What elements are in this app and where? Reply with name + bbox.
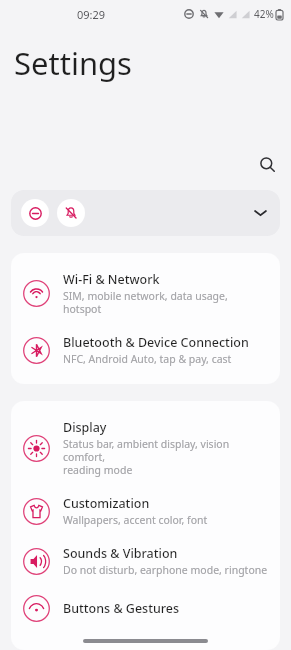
button[interactable]: Customization (11, 486, 280, 536)
button[interactable]: Mute notifications (57, 199, 85, 227)
staticText: Bluetooth & Device Connection (63, 334, 249, 351)
staticText: Settings (14, 42, 132, 84)
staticText: Wallpapers, accent color, font (63, 513, 208, 527)
staticText: NFC, Android Auto, tap & pay, cast (63, 352, 232, 366)
staticText: 09:29 (77, 7, 106, 22)
button[interactable]: Search (251, 148, 283, 180)
staticText: SIM, mobile network, data usage, hotspot (63, 289, 268, 316)
staticText: Sounds & Vibration (63, 545, 178, 562)
button[interactable]: Sounds & Vibration (11, 536, 280, 586)
staticText: Customization (63, 495, 150, 512)
button[interactable]: Do not disturb (11, 190, 280, 236)
button[interactable]: Display (11, 410, 280, 486)
staticText: 42% (254, 7, 274, 21)
staticText: Display (63, 419, 107, 436)
staticText: Do not disturb, earphone mode, ringtone (63, 563, 268, 577)
button[interactable]: Bluetooth & Device Connection (11, 325, 280, 375)
button[interactable]: Do not disturb (21, 199, 49, 227)
staticText: Status bar, ambient display, vision comf… (63, 437, 268, 477)
button[interactable]: Expand (248, 201, 272, 225)
button[interactable]: Wi-Fi & Network (11, 262, 280, 325)
staticText: Buttons & Gestures (63, 600, 180, 617)
staticText: Wi-Fi & Network (63, 271, 160, 288)
button[interactable]: Buttons & Gestures (11, 586, 280, 631)
